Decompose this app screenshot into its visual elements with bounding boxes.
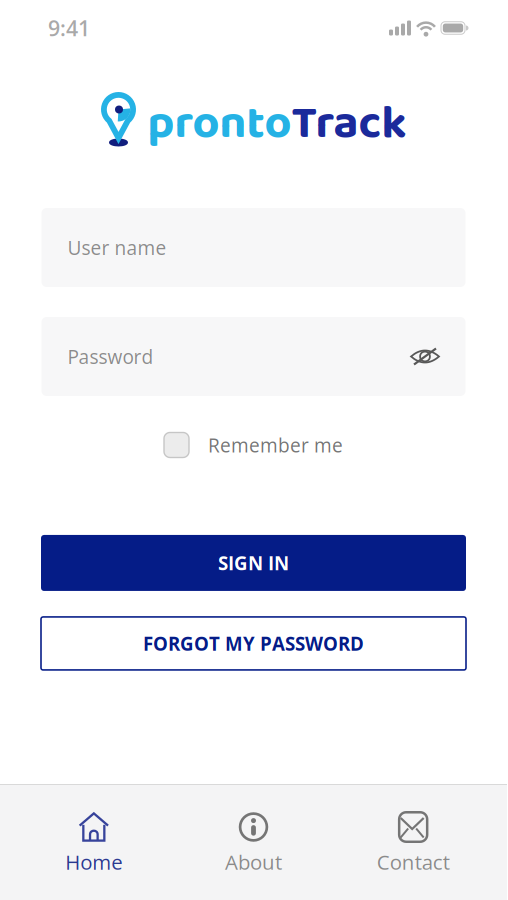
button[interactable]: SIGN IN: [41, 535, 466, 591]
button[interactable]: Remember me: [164, 432, 343, 458]
staticText: Contact: [377, 848, 450, 876]
staticText: Remember me: [208, 432, 343, 458]
button[interactable]: Home: [14, 812, 174, 876]
button[interactable]: User name: [41, 208, 465, 287]
button[interactable]: FORGOT MY PASSWORD: [41, 617, 466, 670]
staticText: 9:41: [48, 13, 90, 43]
button[interactable]: Password: [41, 317, 465, 396]
staticText: About: [225, 848, 282, 876]
staticText: Password: [67, 343, 153, 369]
staticText: Home: [65, 848, 122, 876]
staticText: FORGOT MY PASSWORD: [143, 631, 364, 656]
button[interactable]: About: [174, 812, 333, 876]
staticText: SIGN IN: [218, 550, 289, 576]
staticText: User name: [67, 234, 166, 260]
staticText: pronto: [147, 87, 291, 161]
button[interactable]: Contact: [333, 812, 493, 876]
staticText: Track: [291, 87, 406, 161]
